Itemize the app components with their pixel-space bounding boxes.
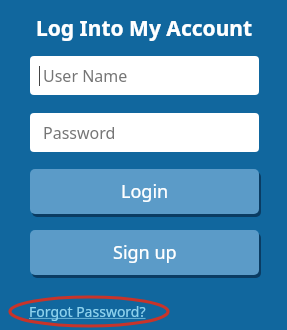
button[interactable]: Forgot Password? xyxy=(29,302,146,321)
staticText: User Name xyxy=(43,65,128,87)
staticText: Login xyxy=(121,179,169,204)
button[interactable]: Login xyxy=(30,169,259,214)
button[interactable]: Sign up xyxy=(30,230,259,275)
staticText: Sign up xyxy=(113,240,177,265)
staticText: Password xyxy=(43,122,116,144)
staticText: Log Into My Account xyxy=(36,14,253,43)
staticText: Forgot Password? xyxy=(29,302,146,321)
button[interactable]: Password xyxy=(30,113,259,152)
button[interactable]: User Name xyxy=(30,56,259,95)
